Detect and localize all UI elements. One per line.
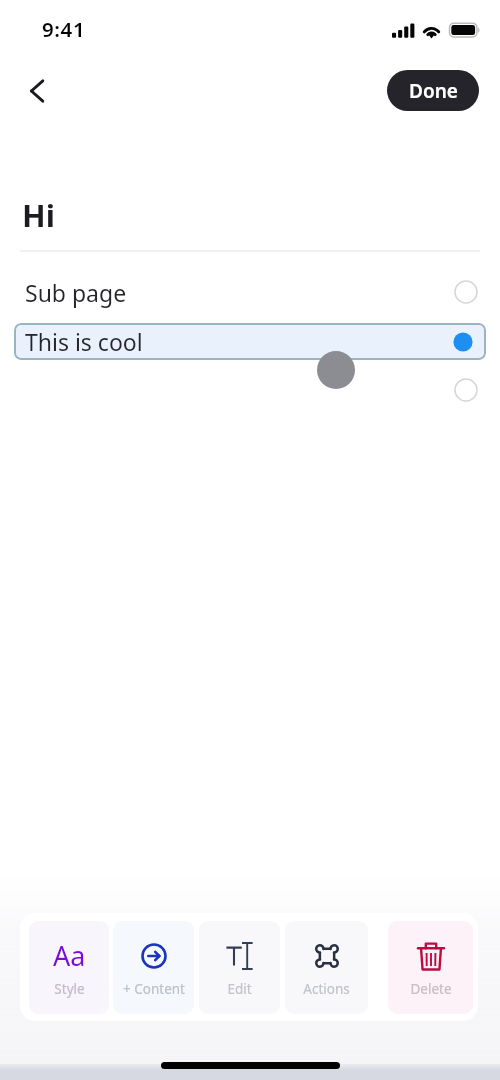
staticText: Edit bbox=[227, 980, 252, 998]
staticText: Sub page bbox=[25, 277, 127, 308]
button[interactable]: This is cool bbox=[14, 323, 486, 360]
staticText: 9:41 bbox=[42, 15, 86, 43]
staticText: Aa bbox=[53, 937, 86, 969]
button[interactable]: Done bbox=[387, 70, 479, 111]
staticText: + Content bbox=[123, 980, 185, 998]
staticText: Done bbox=[409, 78, 458, 104]
button[interactable]: Sub page bbox=[0, 270, 500, 314]
staticText: Hi bbox=[22, 194, 55, 236]
staticText: Delete bbox=[410, 980, 452, 998]
button[interactable]: + Content bbox=[113, 921, 194, 1014]
staticText: Style bbox=[54, 980, 85, 998]
button[interactable]: Back bbox=[16, 70, 58, 112]
staticText: This is cool bbox=[25, 326, 143, 357]
button[interactable]: Actions bbox=[285, 921, 368, 1014]
button[interactable]: Aa bbox=[29, 921, 109, 1014]
button[interactable]: Edit bbox=[199, 921, 280, 1014]
staticText: Actions bbox=[303, 980, 350, 998]
button[interactable] bbox=[0, 368, 500, 412]
button[interactable]: Delete bbox=[388, 921, 473, 1014]
